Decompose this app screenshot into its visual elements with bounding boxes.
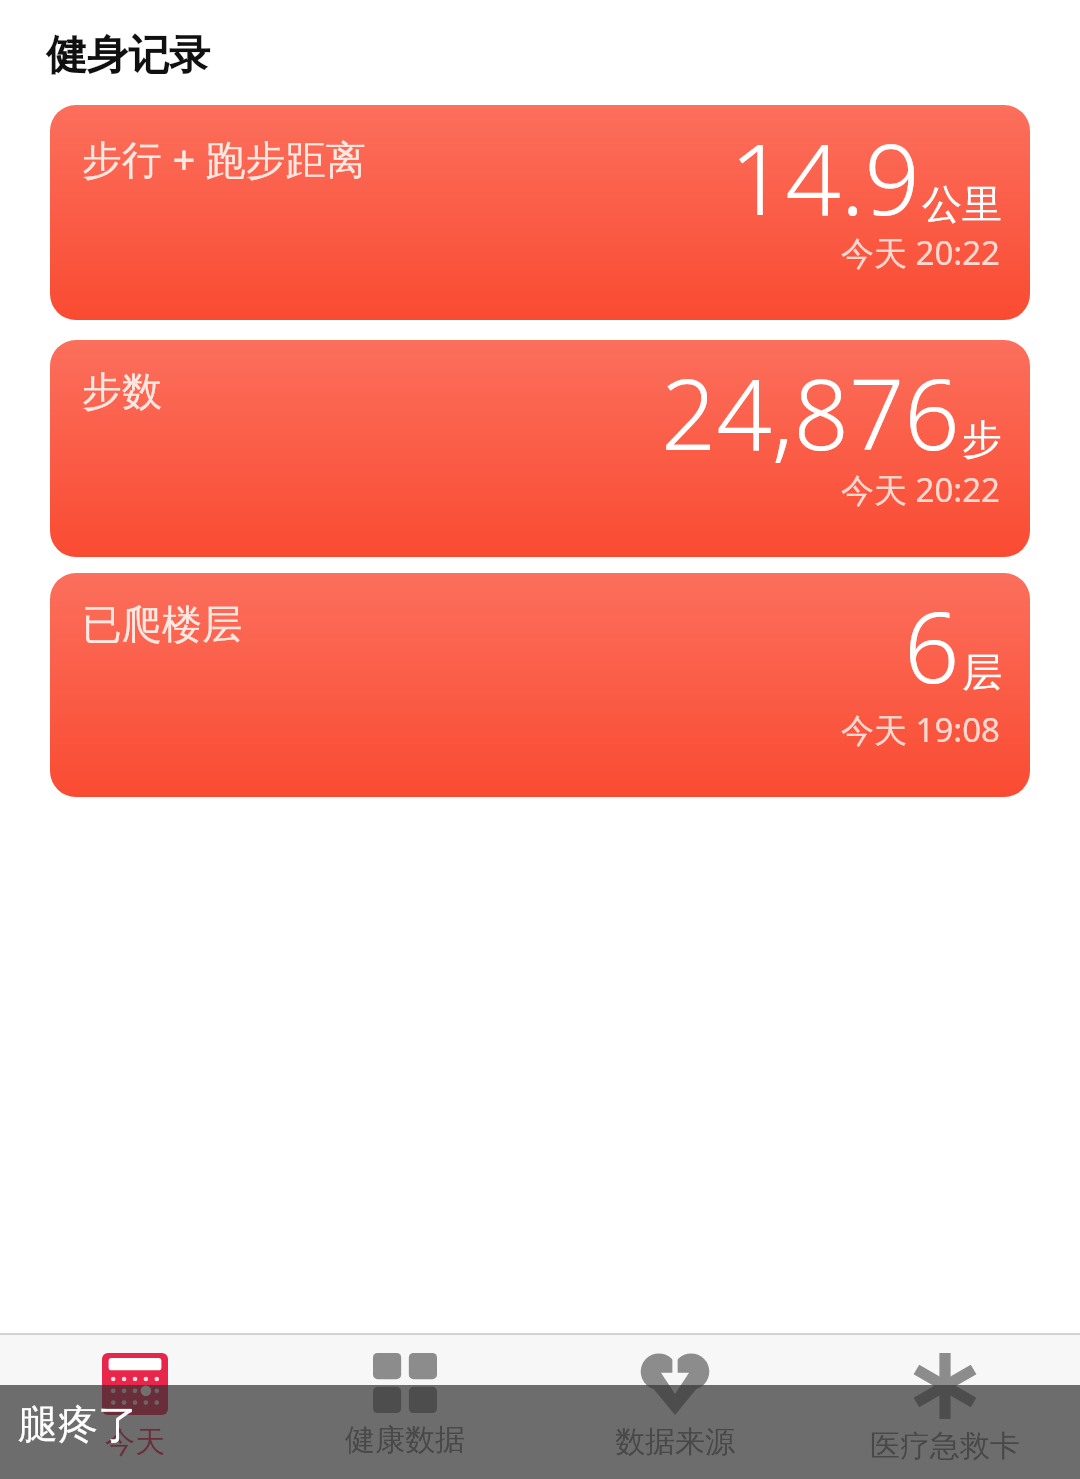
staticText: 腿疼了: [18, 1399, 138, 1449]
staticText: 24,876: [661, 346, 960, 478]
button[interactable]: 健康数据: [270, 1335, 540, 1479]
staticText: 公里: [922, 179, 1002, 229]
staticText: 已爬楼层: [82, 599, 242, 649]
button[interactable]: 医疗急救卡: [810, 1335, 1080, 1479]
button[interactable]: 步行 + 跑步距离: [50, 105, 1030, 320]
staticText: 层: [962, 647, 1002, 697]
staticText: 14.9: [730, 111, 920, 243]
button[interactable]: 数据来源: [540, 1335, 810, 1479]
staticText: 今天 19:08: [841, 707, 1000, 752]
staticText: 今天 20:22: [841, 467, 1000, 512]
button[interactable]: 今天: [0, 1335, 270, 1479]
staticText: 步数: [82, 366, 162, 416]
staticText: 今天: [105, 1423, 165, 1461]
staticText: 6: [904, 579, 960, 711]
staticText: 健身记录: [46, 30, 210, 82]
staticText: 医疗急救卡: [870, 1427, 1020, 1465]
staticText: 步: [962, 414, 1002, 464]
staticText: 数据来源: [615, 1423, 735, 1461]
staticText: 健康数据: [345, 1421, 465, 1459]
staticText: 步行 + 跑步距离: [82, 131, 366, 186]
staticText: 今天 20:22: [841, 230, 1000, 275]
button[interactable]: 已爬楼层: [50, 573, 1030, 797]
button[interactable]: 步数: [50, 340, 1030, 557]
